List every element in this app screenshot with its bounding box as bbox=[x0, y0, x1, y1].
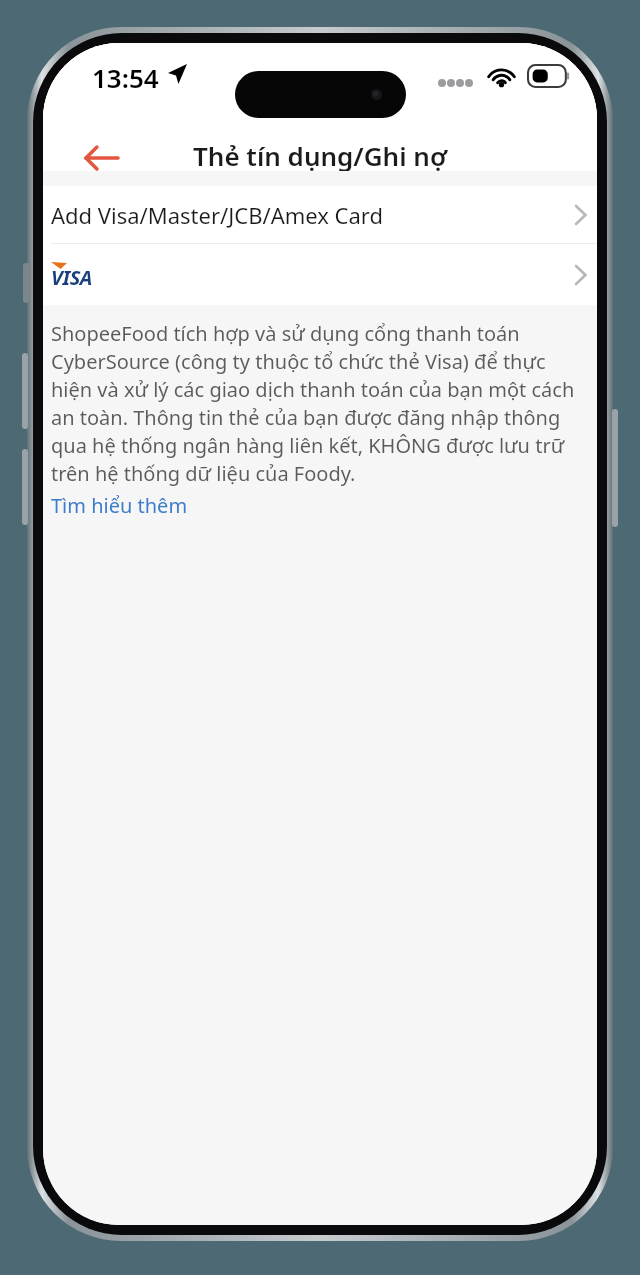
staticText: 13:54 bbox=[92, 60, 159, 95]
button[interactable]: VISA bbox=[43, 244, 597, 305]
button[interactable]: Back bbox=[71, 128, 131, 188]
staticText: Thẻ tín dụng/Ghi nợ bbox=[193, 138, 447, 173]
button[interactable]: Add Visa/Master/JCB/Amex Card bbox=[43, 186, 597, 243]
staticText: VISA bbox=[51, 264, 93, 291]
staticText: ShopeeFood tích hợp và sử dụng cổng than… bbox=[51, 320, 589, 487]
staticText: Tìm hiểu thêm bbox=[51, 492, 188, 519]
staticText: Add Visa/Master/JCB/Amex Card bbox=[51, 200, 384, 230]
button[interactable]: Tìm hiểu thêm bbox=[51, 492, 188, 519]
